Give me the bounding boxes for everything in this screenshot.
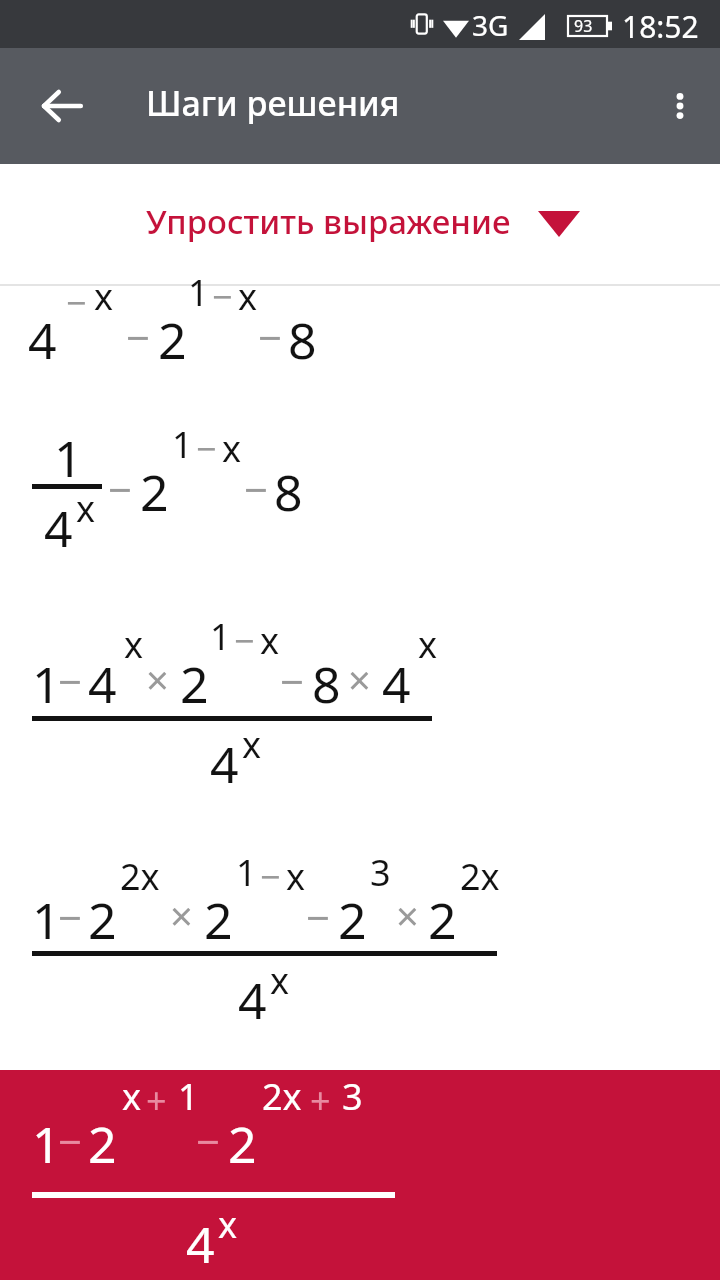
staticText: 2 (158, 306, 187, 374)
staticText: 4 (238, 966, 267, 1034)
staticText: × (348, 652, 371, 706)
staticText: − (234, 616, 255, 665)
staticText: 4 (210, 730, 239, 798)
staticText: 8 (274, 458, 303, 526)
staticText: x (238, 272, 258, 321)
staticText: 4 (186, 1210, 215, 1278)
staticText: 4 (382, 650, 411, 718)
staticText: 2 (140, 458, 169, 526)
staticText: 93 (574, 15, 593, 37)
staticText: 4 (28, 306, 57, 374)
staticText: − (108, 460, 133, 517)
button[interactable]: More options (644, 70, 716, 142)
staticText: x (222, 424, 242, 473)
staticText: Шаги решения (146, 80, 400, 126)
staticText: x (270, 956, 290, 1005)
staticText: 1 (188, 268, 209, 317)
staticText: − (260, 852, 281, 901)
staticText: 8 (288, 306, 317, 374)
staticText: 1 (32, 650, 61, 718)
staticText: 2 (228, 1110, 257, 1178)
staticText: 3 (342, 1072, 363, 1121)
staticText: x (218, 1200, 238, 1249)
staticText: x (418, 620, 438, 669)
staticText: x (260, 616, 280, 665)
staticText: 3G (472, 6, 509, 44)
staticText: − (196, 424, 217, 473)
staticText: x (242, 720, 262, 769)
staticText: 4 (88, 650, 117, 718)
staticText: 1 (172, 420, 193, 469)
staticText: 1 (210, 612, 231, 661)
staticText: 1 (236, 848, 257, 897)
staticText: 4 (44, 494, 73, 562)
staticText: x (94, 272, 114, 321)
staticText: x (122, 1072, 142, 1121)
staticText: 2 (88, 1110, 117, 1178)
staticText: 1 (32, 1110, 61, 1178)
staticText: − (306, 888, 331, 945)
button[interactable]: Упростить выражение (0, 164, 720, 284)
staticText: 2x (120, 852, 160, 901)
staticText: × (146, 652, 169, 706)
staticText: x (124, 620, 144, 669)
staticText: − (58, 888, 83, 945)
staticText: + (146, 1076, 167, 1125)
staticText: 2x (262, 1072, 302, 1121)
staticText: 2x (460, 852, 500, 901)
staticText: x (286, 852, 306, 901)
staticText: − (196, 1112, 221, 1169)
staticText: 3 (370, 848, 391, 897)
staticText: − (58, 1112, 83, 1169)
staticText: − (280, 652, 305, 709)
staticText: × (170, 888, 193, 942)
button[interactable]: 1 (0, 1070, 720, 1280)
staticText: 2 (428, 886, 457, 954)
staticText: 2 (338, 886, 367, 954)
staticText: Упростить выражение (146, 199, 511, 244)
staticText: 1 (54, 424, 83, 492)
staticText: 2 (180, 650, 209, 718)
staticText: − (212, 272, 233, 321)
staticText: 18:52 (622, 6, 699, 47)
staticText: 1 (178, 1072, 199, 1121)
staticText: − (66, 278, 87, 327)
staticText: − (58, 652, 83, 709)
staticText: 1 (32, 886, 61, 954)
button[interactable]: Back (26, 70, 98, 142)
staticText: + (310, 1076, 331, 1125)
staticText: − (126, 308, 151, 365)
staticText: x (76, 484, 96, 533)
staticText: 2 (88, 886, 117, 954)
staticText: × (396, 888, 419, 942)
staticText: − (244, 460, 269, 517)
staticText: 8 (312, 650, 341, 718)
staticText: 2 (204, 886, 233, 954)
staticText: − (258, 308, 283, 365)
